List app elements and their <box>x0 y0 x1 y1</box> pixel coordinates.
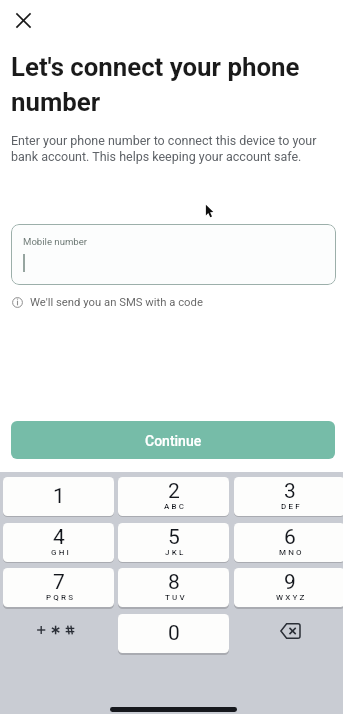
staticText: Mobile number <box>23 236 88 247</box>
button[interactable]: Close <box>9 6 38 35</box>
button[interactable]: 2 <box>118 477 229 516</box>
button[interactable]: 6 <box>234 523 343 562</box>
staticText: 1 <box>53 484 65 509</box>
staticText: JKL <box>165 548 186 557</box>
staticText: 4 <box>53 525 65 550</box>
staticText: PQRS <box>46 593 76 602</box>
staticText: 5 <box>168 525 180 550</box>
staticText: Let's connect your phone number <box>11 52 343 117</box>
staticText: GHI <box>51 548 71 557</box>
button[interactable]: 9 <box>234 568 343 607</box>
staticText: 6 <box>284 525 296 550</box>
staticText: WXYZ <box>276 593 307 602</box>
button[interactable]: Continue <box>11 421 335 459</box>
staticText: Enter your phone number to connect this … <box>11 133 329 164</box>
staticText: 0 <box>168 621 180 646</box>
button[interactable]: 5 <box>118 523 229 562</box>
button[interactable]: 0 <box>118 614 229 653</box>
button[interactable]: 7 <box>3 568 114 607</box>
button[interactable]: 3 <box>234 477 343 516</box>
staticText: 2 <box>168 479 180 504</box>
staticText: Continue <box>145 433 202 449</box>
staticText: ABC <box>164 502 187 511</box>
staticText: MNO <box>279 548 304 557</box>
staticText: We'll send you an SMS with a code <box>30 296 203 309</box>
button[interactable]: 8 <box>118 568 229 607</box>
staticText: TUV <box>165 593 187 602</box>
button[interactable]: 1 <box>3 477 114 516</box>
button[interactable]: Mobile number <box>11 224 336 285</box>
staticText: 8 <box>168 570 180 595</box>
staticText: 3 <box>284 479 296 504</box>
button[interactable]: Backspace <box>234 614 343 653</box>
staticText: 9 <box>284 570 296 595</box>
button[interactable]: 4 <box>3 523 114 562</box>
button[interactable]: Symbols <box>3 614 114 653</box>
staticText: 7 <box>53 570 65 595</box>
staticText: DEF <box>281 502 302 511</box>
